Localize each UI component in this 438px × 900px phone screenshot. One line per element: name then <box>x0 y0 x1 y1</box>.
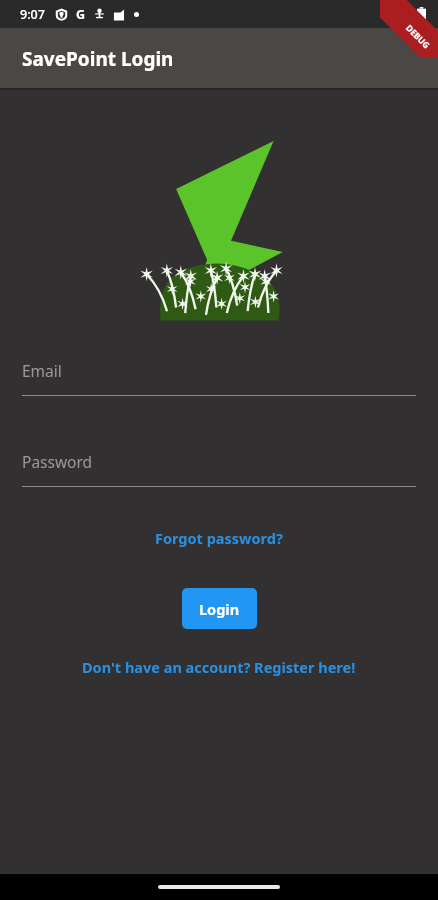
button[interactable]: Forgot password? <box>149 524 289 552</box>
staticText: Login <box>199 599 240 619</box>
button[interactable]: Don't have an account? Register here! <box>76 653 362 681</box>
button[interactable]: Password <box>22 451 416 487</box>
other: Debug build banner <box>380 0 438 58</box>
staticText: Password <box>22 451 93 472</box>
staticText: Forgot password? <box>155 528 283 548</box>
staticText: 9:07 <box>20 6 45 23</box>
button[interactable]: Login <box>182 588 257 629</box>
staticText: Email <box>22 360 62 381</box>
staticText: SavePoint Login <box>22 46 174 72</box>
button[interactable]: Email <box>22 360 416 396</box>
staticText: DEBUG <box>403 22 433 52</box>
staticText: Don't have an account? Register here! <box>82 657 356 677</box>
button[interactable]: Home <box>158 885 280 889</box>
staticText: G <box>76 6 86 23</box>
